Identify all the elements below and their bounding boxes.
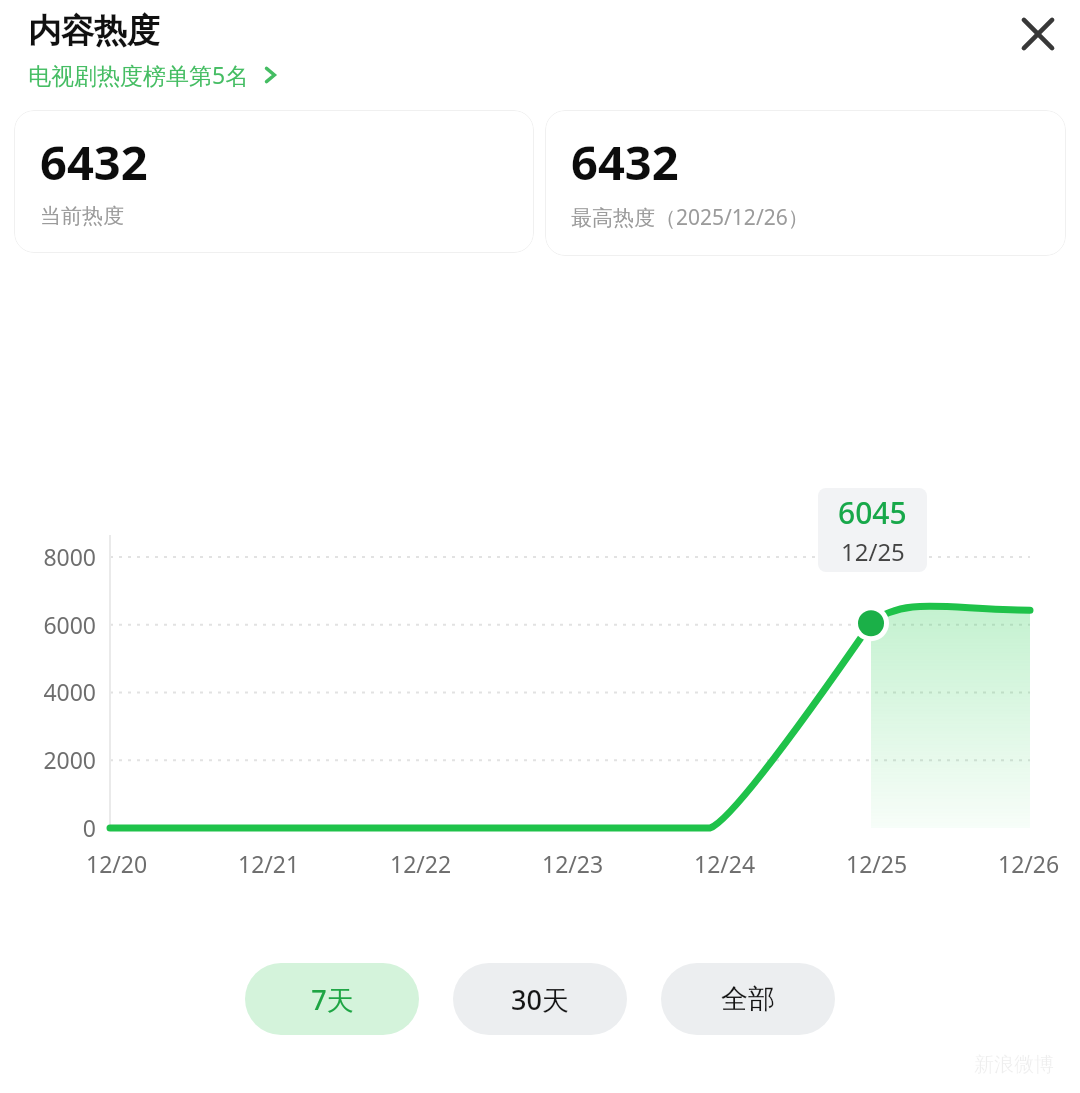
button[interactable]: Close bbox=[1008, 4, 1068, 64]
staticText: 7天 bbox=[311, 981, 354, 1018]
staticText: 12/20 bbox=[86, 848, 148, 879]
staticText: 0 bbox=[0, 812, 96, 843]
staticText: 6045 bbox=[838, 492, 907, 533]
button[interactable]: 30天 bbox=[453, 963, 627, 1035]
staticText: 新浪微博 bbox=[974, 1052, 1054, 1077]
staticText: 12/24 bbox=[694, 848, 756, 879]
staticText: 12/21 bbox=[238, 848, 300, 879]
staticText: 电视剧热度榜单第5名 bbox=[28, 59, 249, 90]
staticText: 内容热度 bbox=[28, 10, 160, 52]
staticText: 6432 bbox=[40, 130, 148, 194]
staticText: 12/22 bbox=[390, 848, 452, 879]
staticText: 当前热度 bbox=[40, 203, 124, 229]
staticText: 12/26 bbox=[998, 848, 1060, 879]
staticText: 最高热度（2025/12/26） bbox=[571, 203, 809, 232]
staticText: 12/25 bbox=[846, 848, 908, 879]
button[interactable]: 全部 bbox=[661, 963, 835, 1035]
staticText: 12/23 bbox=[542, 848, 604, 879]
staticText: 30天 bbox=[511, 981, 569, 1018]
button[interactable]: 7天 bbox=[245, 963, 419, 1035]
button[interactable]: 6432 bbox=[545, 110, 1066, 256]
staticText: 12/25 bbox=[841, 535, 905, 568]
staticText: 6000 bbox=[0, 609, 96, 640]
staticText: 全部 bbox=[721, 982, 775, 1016]
button[interactable]: 6432 bbox=[14, 110, 534, 253]
staticText: 8000 bbox=[0, 541, 96, 572]
staticText: 2000 bbox=[0, 744, 96, 775]
button[interactable]: 电视剧热度榜单第5名 bbox=[28, 57, 281, 92]
staticText: 6432 bbox=[571, 130, 679, 194]
staticText: 4000 bbox=[0, 676, 96, 707]
